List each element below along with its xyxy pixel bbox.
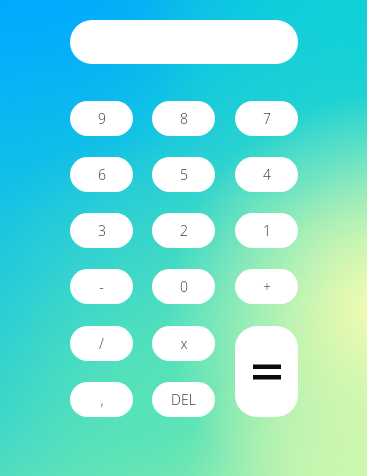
staticText: 9	[98, 109, 106, 128]
staticText: +	[263, 277, 271, 296]
button[interactable]: 3	[70, 213, 133, 248]
button[interactable]: +	[235, 269, 298, 304]
staticText: 2	[180, 221, 188, 240]
button[interactable]: 7	[235, 101, 298, 136]
button[interactable]: 8	[152, 101, 215, 136]
staticText: 3	[98, 221, 106, 240]
button[interactable]: ,	[70, 382, 133, 417]
staticText: 6	[98, 165, 106, 184]
staticText: -	[99, 277, 104, 296]
staticText: 4	[263, 165, 271, 184]
staticText: ,	[100, 390, 104, 409]
button[interactable]: x	[152, 326, 215, 361]
button[interactable]: Display	[70, 20, 298, 64]
button[interactable]: 5	[152, 157, 215, 192]
staticText: DEL	[171, 390, 196, 409]
staticText: 0	[180, 277, 188, 296]
button[interactable]: 9	[70, 101, 133, 136]
staticText: 5	[180, 165, 188, 184]
staticText: x	[180, 334, 188, 353]
button[interactable]: -	[70, 269, 133, 304]
button[interactable]: 0	[152, 269, 215, 304]
staticText: 7	[263, 109, 271, 128]
button[interactable]: DEL	[152, 382, 215, 417]
staticText: /	[99, 334, 104, 353]
button[interactable]: 6	[70, 157, 133, 192]
button[interactable]: 4	[235, 157, 298, 192]
button[interactable]: 2	[152, 213, 215, 248]
button[interactable]: 1	[235, 213, 298, 248]
button[interactable]: /	[70, 326, 133, 361]
button[interactable]: Equals	[235, 326, 298, 417]
staticText: 1	[263, 221, 271, 240]
staticText: 8	[180, 109, 188, 128]
